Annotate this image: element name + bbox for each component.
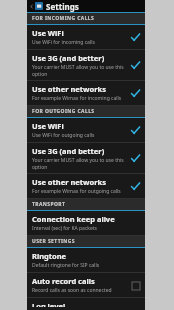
staticText: Use other networks (32, 177, 106, 187)
staticText: Your carrier MUST allow you to use this … (32, 157, 127, 170)
button[interactable]: Use 3G (and better) (27, 143, 145, 174)
button[interactable]: Auto record calls (27, 273, 145, 298)
staticText: Default ringtone for SIP calls (32, 262, 100, 269)
button[interactable]: Use other networks (27, 81, 145, 106)
staticText: Use WiFi for incoming calls (32, 39, 95, 46)
button[interactable]: Use WiFi (27, 25, 145, 50)
staticText: TRANSPORT (32, 201, 66, 208)
staticText: Use WiFi for outgoing calls (32, 132, 95, 139)
staticText: Your carrier MUST allow you to use this … (32, 64, 127, 77)
staticText: Auto record calls (32, 276, 95, 286)
staticText: Use WiFi (32, 121, 64, 131)
staticText: Record calls as soon as connected (32, 287, 112, 294)
staticText: Interval (sec) for KA packets (32, 225, 97, 232)
staticText: USER SETTINGS (32, 238, 75, 245)
staticText: For example Wimax for incoming calls (32, 95, 122, 102)
button[interactable]: Log level (27, 298, 145, 310)
staticText: Use 3G (and better) (32, 146, 105, 156)
staticText: Settings (46, 1, 79, 12)
button[interactable]: Use other networks (27, 174, 145, 199)
staticText: Use 3G (and better) (32, 53, 105, 63)
button[interactable]: Connection keep alive (27, 211, 145, 236)
staticText: Use WiFi (32, 28, 64, 38)
button[interactable]: Back (27, 0, 145, 12)
staticText: Connection keep alive (32, 214, 115, 224)
staticText: For example Wimax for outgoing calls (32, 188, 121, 195)
button[interactable]: Use WiFi (27, 118, 145, 143)
staticText: Log level (32, 301, 66, 307)
staticText: FOR INCOMING CALLS (32, 15, 95, 22)
staticText: FOR OUTGOING CALLS (32, 108, 95, 115)
other: Back (29, 4, 34, 9)
button[interactable]: Ringtone (27, 248, 145, 273)
staticText: Use other networks (32, 84, 106, 94)
button[interactable]: Use 3G (and better) (27, 50, 145, 81)
staticText: Ringtone (32, 251, 67, 261)
